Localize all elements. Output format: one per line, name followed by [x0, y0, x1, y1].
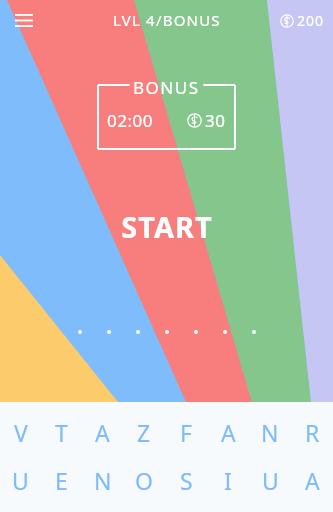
- staticText: T: [55, 417, 68, 448]
- staticText: N: [261, 417, 279, 448]
- button[interactable]: A: [82, 416, 123, 449]
- staticText: R: [305, 417, 320, 448]
- staticText: O: [135, 465, 153, 496]
- button[interactable]: U: [249, 464, 291, 497]
- staticText: V: [14, 417, 28, 448]
- staticText: A: [305, 465, 320, 496]
- button[interactable]: R: [291, 416, 333, 449]
- staticText: U: [262, 465, 279, 496]
- button[interactable]: Z: [123, 416, 165, 449]
- staticText: E: [55, 465, 68, 496]
- button[interactable]: START: [121, 207, 213, 246]
- button[interactable]: T: [41, 416, 82, 449]
- button[interactable]: U: [0, 464, 41, 497]
- staticText: A: [221, 417, 236, 448]
- staticText: START: [121, 207, 213, 246]
- button[interactable]: E: [41, 464, 82, 497]
- staticText: A: [95, 417, 110, 448]
- button[interactable]: Menu: [8, 4, 40, 36]
- button[interactable]: S: [165, 464, 207, 497]
- staticText: U: [12, 465, 29, 496]
- staticText: Z: [137, 417, 151, 448]
- staticText: LVL 4/BONUS: [113, 10, 221, 30]
- staticText: BONUS: [133, 76, 200, 99]
- button[interactable]: N: [82, 464, 123, 497]
- button[interactable]: I: [207, 464, 249, 497]
- button[interactable]: A: [207, 416, 249, 449]
- button[interactable]: N: [249, 416, 291, 449]
- staticText: 02:00: [107, 109, 153, 132]
- staticText: 200: [297, 11, 325, 30]
- button[interactable]: V: [0, 416, 41, 449]
- staticText: F: [180, 417, 192, 448]
- button[interactable]: A: [291, 464, 333, 497]
- staticText: I: [224, 465, 232, 496]
- button[interactable]: 200: [280, 11, 325, 30]
- staticText: S: [180, 465, 193, 496]
- staticText: N: [94, 465, 112, 496]
- button[interactable]: O: [123, 464, 165, 497]
- button[interactable]: F: [165, 416, 207, 449]
- staticText: 30: [205, 109, 226, 132]
